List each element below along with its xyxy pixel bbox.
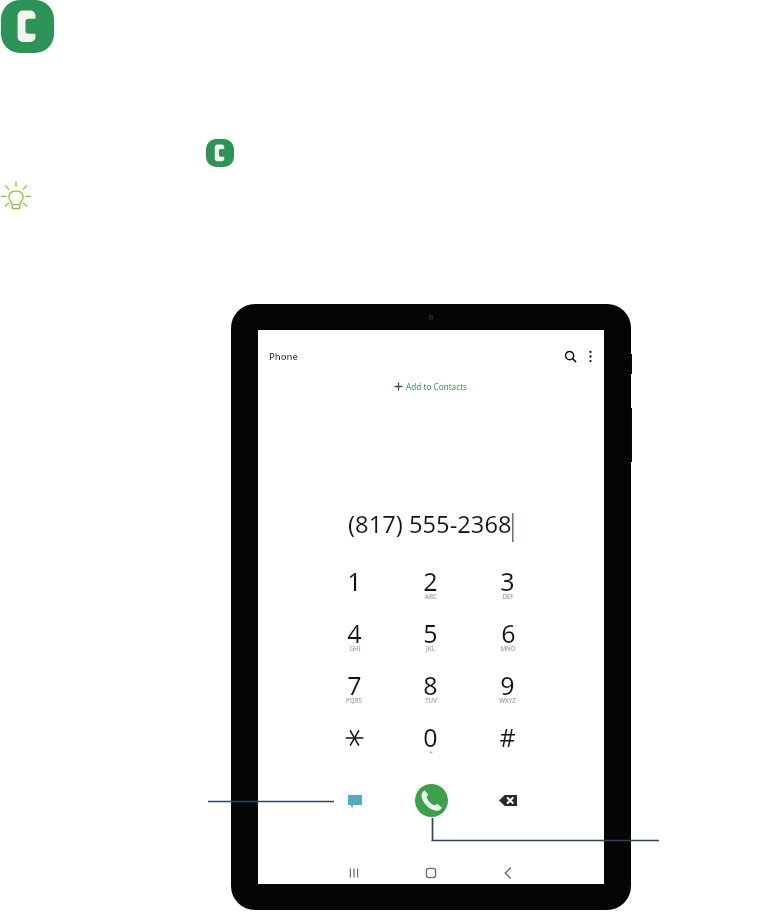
- button[interactable]: 9: [469, 668, 546, 720]
- button[interactable]: 7: [316, 668, 392, 720]
- button[interactable]: 3: [469, 564, 546, 616]
- staticText: 0: [423, 720, 438, 754]
- button[interactable]: 5: [392, 616, 469, 668]
- button[interactable]: Add to Contacts: [391, 379, 471, 394]
- button[interactable]: Phone app: [206, 139, 234, 167]
- staticText: Phone: [269, 350, 298, 363]
- staticText: 6: [501, 616, 516, 650]
- button[interactable]: Backspace: [496, 788, 520, 812]
- button[interactable]: More options: [582, 348, 599, 365]
- staticText: 9: [500, 668, 515, 702]
- staticText: #: [499, 720, 516, 754]
- staticText: JKL: [426, 644, 435, 652]
- button[interactable]: #: [469, 720, 546, 772]
- staticText: MNO: [500, 644, 516, 652]
- button[interactable]: Recent apps: [344, 863, 364, 883]
- button[interactable]: 8: [392, 668, 469, 720]
- button[interactable]: 4: [316, 616, 392, 668]
- button[interactable]: Search: [562, 348, 579, 365]
- staticText: GHI: [349, 644, 361, 652]
- staticText: 2: [423, 564, 438, 598]
- staticText: ABC: [425, 592, 437, 600]
- button[interactable]: Back: [498, 863, 518, 883]
- staticText: Add to Contacts: [406, 381, 468, 392]
- staticText: 8: [423, 668, 438, 702]
- staticText: DEF: [502, 592, 514, 600]
- staticText: (817) 555-2368: [348, 508, 512, 540]
- staticText: 1: [347, 564, 362, 598]
- staticText: 4: [347, 616, 362, 650]
- staticText: TUV: [425, 696, 437, 704]
- button[interactable]: Home: [421, 863, 441, 883]
- button[interactable]: 2: [392, 564, 469, 616]
- staticText: WXYZ: [499, 696, 516, 704]
- staticText: PQRS: [346, 696, 362, 704]
- button[interactable]: Call: [415, 784, 448, 817]
- staticText: 3: [500, 564, 515, 598]
- staticText: 7: [347, 668, 362, 702]
- button[interactable]: Send message: [343, 788, 367, 812]
- staticText: 5: [423, 616, 438, 650]
- button[interactable]: 0: [392, 720, 469, 772]
- button[interactable]: Phone app icon: [1, 0, 54, 53]
- staticText: +: [429, 748, 433, 756]
- button[interactable]: 1: [316, 564, 392, 616]
- button[interactable]: 6: [469, 616, 546, 668]
- button[interactable]: [316, 720, 392, 772]
